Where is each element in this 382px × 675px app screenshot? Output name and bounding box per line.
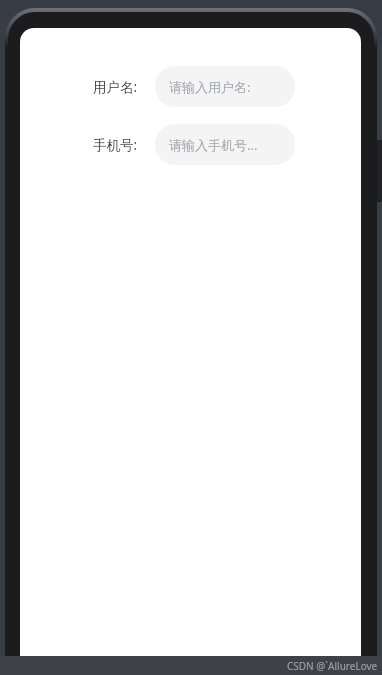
staticText: 请输入用户名: bbox=[169, 78, 251, 96]
button[interactable]: 用户名输入框 bbox=[155, 66, 295, 107]
staticText: CSDN @`AllureLove bbox=[287, 659, 378, 673]
staticText: 手机号: bbox=[92, 136, 137, 154]
staticText: 用户名: bbox=[92, 78, 137, 96]
button[interactable]: 手机号输入框 bbox=[155, 124, 295, 165]
staticText: 请输入手机号... bbox=[169, 136, 258, 154]
